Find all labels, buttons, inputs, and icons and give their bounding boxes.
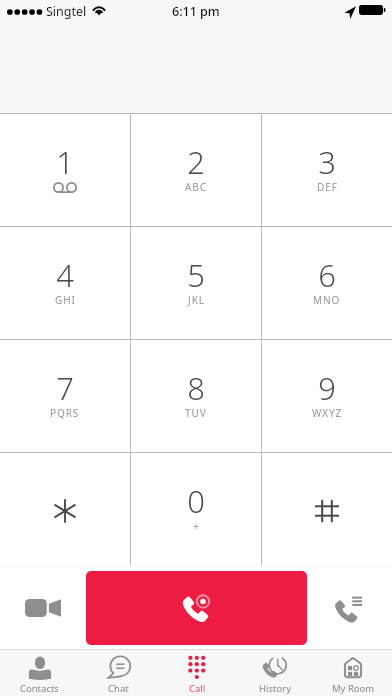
- button[interactable]: 3: [262, 114, 392, 226]
- staticText: 0: [187, 480, 205, 522]
- staticText: ABC: [185, 180, 207, 194]
- staticText: Singtel: [46, 3, 87, 20]
- staticText: Chat: [108, 682, 129, 695]
- staticText: DEF: [317, 180, 338, 194]
- staticText: Contacts: [20, 682, 59, 695]
- staticText: WXYZ: [312, 406, 343, 420]
- staticText: +: [193, 519, 200, 533]
- staticText: MNO: [313, 293, 341, 307]
- other: Location: [344, 0, 356, 22]
- button[interactable]: 4: [0, 227, 130, 339]
- staticText: 2: [187, 141, 205, 183]
- button[interactable]: Video call: [0, 566, 85, 649]
- button[interactable]: 7: [0, 340, 130, 452]
- button[interactable]: 9: [262, 340, 392, 452]
- staticText: 4: [56, 254, 74, 296]
- staticText: PQRS: [50, 406, 80, 420]
- button[interactable]: 2: [131, 114, 261, 226]
- staticText: GHI: [55, 293, 76, 307]
- button[interactable]: [0, 453, 130, 565]
- button[interactable]: Call with list: [306, 566, 392, 649]
- staticText: 7: [56, 367, 74, 409]
- staticText: 8: [187, 367, 205, 409]
- staticText: 9: [318, 367, 336, 409]
- button[interactable]: 6: [262, 227, 392, 339]
- button[interactable]: 1: [0, 114, 130, 226]
- button[interactable]: Call: [158, 650, 236, 696]
- staticText: TUV: [185, 406, 207, 420]
- staticText: History: [259, 682, 291, 695]
- button[interactable]: Contacts: [0, 650, 79, 696]
- button[interactable]: 5: [131, 227, 261, 339]
- staticText: Call: [189, 682, 206, 695]
- button[interactable]: Call: [86, 571, 307, 645]
- staticText: 1: [56, 141, 74, 183]
- staticText: 3: [318, 141, 336, 183]
- button[interactable]: 0: [131, 453, 261, 565]
- button[interactable]: [262, 453, 392, 565]
- staticText: 5: [187, 254, 205, 296]
- staticText: 6:11 pm: [172, 3, 220, 20]
- button[interactable]: 8: [131, 340, 261, 452]
- staticText: 6: [318, 254, 336, 296]
- button[interactable]: History: [236, 650, 314, 696]
- button[interactable]: My Room: [314, 650, 392, 696]
- button[interactable]: Chat: [79, 650, 158, 696]
- staticText: My Room: [332, 682, 375, 695]
- staticText: JKL: [188, 293, 205, 307]
